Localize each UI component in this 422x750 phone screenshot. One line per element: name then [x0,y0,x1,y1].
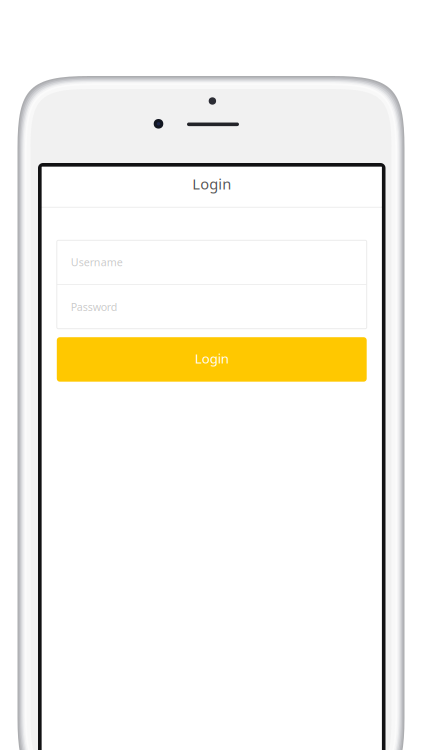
staticText: Login [195,350,229,367]
staticText: Password [71,300,118,314]
staticText: Username [71,255,123,269]
button[interactable]: Username [57,240,367,284]
button[interactable]: Password [57,285,367,329]
button[interactable]: Login [57,337,367,382]
staticText: Login [192,174,231,194]
